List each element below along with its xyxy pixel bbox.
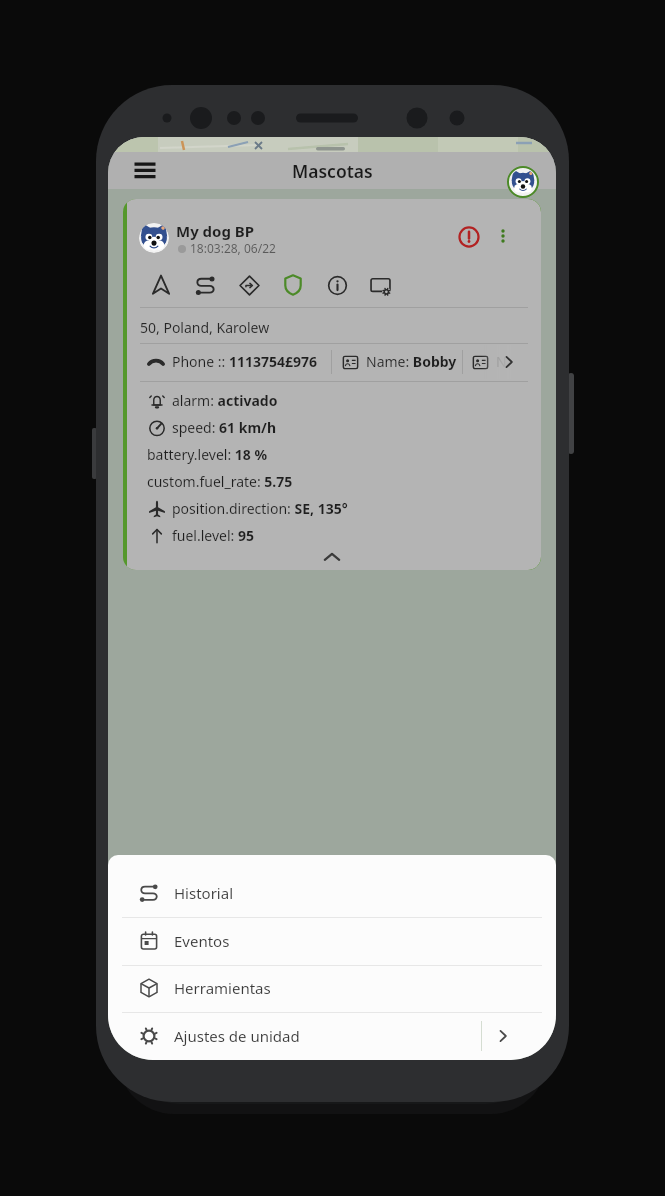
staticText: Herramientas — [174, 978, 271, 998]
staticText: Historial — [174, 883, 234, 903]
button[interactable] — [370, 275, 391, 296]
button[interactable] — [327, 275, 348, 296]
button[interactable] — [455, 223, 483, 251]
button[interactable] — [134, 161, 156, 180]
button[interactable] — [150, 274, 172, 296]
staticText: Name: Bobby — [366, 352, 457, 371]
staticText: 50, Poland, Karolew — [140, 318, 270, 337]
staticText: fuel.level: 95 — [172, 526, 254, 545]
button[interactable]: Name: Bobby — [366, 352, 457, 371]
button[interactable]: Ajustes de unidad — [108, 1012, 556, 1060]
staticText: Phone :: 1113754£976 — [172, 352, 318, 371]
button[interactable]: Eventos — [108, 917, 556, 965]
button[interactable] — [507, 166, 539, 198]
staticText: My dog BP — [176, 221, 255, 241]
button[interactable]: Historial — [108, 869, 556, 917]
staticText: battery.level: 18 % — [147, 445, 268, 464]
button[interactable]: Herramientas — [108, 965, 556, 1012]
button[interactable] — [239, 275, 260, 296]
staticText: position.direction: SE, 135° — [172, 499, 348, 518]
staticText: alarm: activado — [172, 391, 278, 410]
staticText: Mascotas — [292, 159, 373, 183]
staticText: custom.fuel_rate: 5.75 — [147, 472, 293, 491]
button[interactable] — [494, 1027, 512, 1045]
staticText: Ajustes de unidad — [174, 1026, 300, 1046]
button[interactable] — [195, 275, 216, 296]
button[interactable] — [320, 549, 344, 565]
button[interactable] — [493, 225, 513, 245]
button[interactable]: 50, Poland, Karolew — [140, 318, 270, 337]
staticText: speed: 61 km/h — [172, 418, 277, 437]
staticText: Eventos — [174, 931, 230, 951]
button[interactable] — [282, 274, 304, 296]
button[interactable]: Phone :: 1113754£976 — [172, 352, 318, 371]
button[interactable] — [500, 353, 518, 371]
staticText: 18:03:28, 06/22 — [190, 240, 276, 256]
staticText: Na — [496, 352, 515, 371]
